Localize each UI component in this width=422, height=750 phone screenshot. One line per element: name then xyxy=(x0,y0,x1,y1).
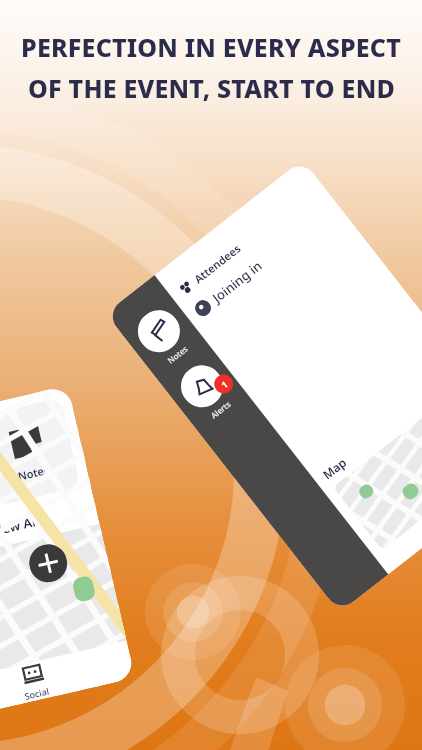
staticText: Attendees xyxy=(191,241,243,286)
button[interactable]: Notes xyxy=(105,159,422,613)
staticText: 1 xyxy=(218,377,230,391)
button[interactable]: Add xyxy=(25,540,71,586)
button[interactable]: Notes xyxy=(129,302,188,361)
button[interactable]: Notes xyxy=(0,397,81,506)
button[interactable]: Files xyxy=(0,385,135,723)
staticText: View All xyxy=(0,511,41,540)
button[interactable]: Alerts xyxy=(172,357,231,416)
staticText: PERFECTION IN EVERY ASPECT xyxy=(21,30,401,64)
staticText: Notes xyxy=(16,462,51,484)
staticText: OF THE EVENT, START TO END xyxy=(28,71,395,105)
staticText: Joining in xyxy=(208,256,266,307)
staticText: Map xyxy=(319,454,350,482)
staticText: Notes xyxy=(165,343,190,365)
staticText: Alerts xyxy=(208,398,233,421)
staticText: Social xyxy=(23,685,50,702)
